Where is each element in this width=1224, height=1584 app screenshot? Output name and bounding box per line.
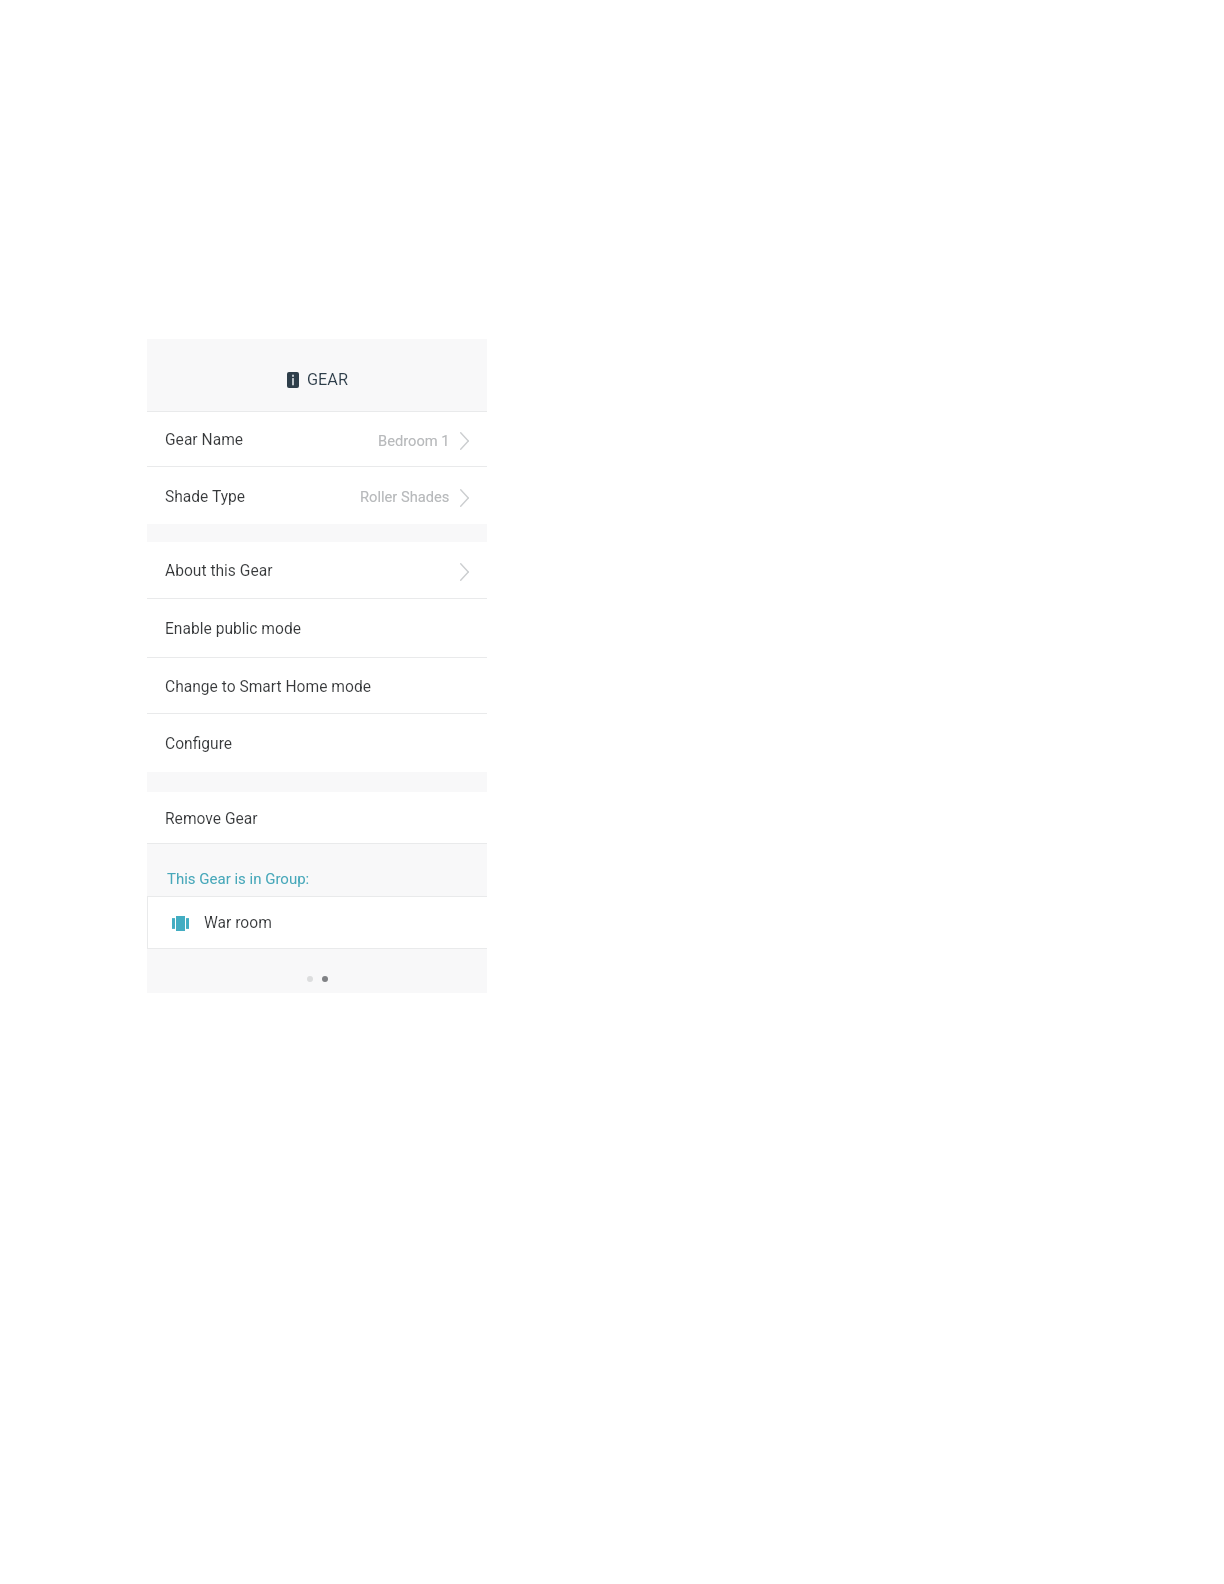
button[interactable]: Remove Gear — [147, 792, 487, 843]
staticText: GEAR — [307, 370, 349, 389]
staticText: Remove Gear — [165, 810, 258, 828]
button[interactable]: Shade Type — [147, 467, 487, 524]
button[interactable]: Page 2 — [322, 976, 328, 982]
button[interactable]: Gear Name — [147, 412, 487, 466]
button[interactable]: About this Gear — [147, 542, 487, 598]
staticText: Change to Smart Home mode — [165, 678, 371, 696]
button[interactable]: Page 1 — [307, 976, 313, 982]
button[interactable]: Enable public mode — [147, 599, 487, 657]
staticText: Enable public mode — [165, 620, 301, 638]
staticText: War room — [204, 914, 272, 932]
button[interactable]: Change to Smart Home mode — [147, 658, 487, 713]
staticText: Configure — [165, 735, 233, 753]
staticText: Bedroom 1 — [378, 432, 450, 449]
button[interactable]: Configure — [147, 714, 487, 772]
staticText: Roller Shades — [360, 488, 450, 505]
staticText: Shade Type — [165, 488, 246, 506]
button[interactable]: Group — [148, 897, 487, 948]
staticText: About this Gear — [165, 562, 273, 580]
staticText: Gear Name — [165, 431, 244, 449]
staticText: This Gear is in Group: — [167, 870, 310, 888]
other: Group — [172, 916, 189, 931]
other: Gear information — [287, 372, 299, 388]
